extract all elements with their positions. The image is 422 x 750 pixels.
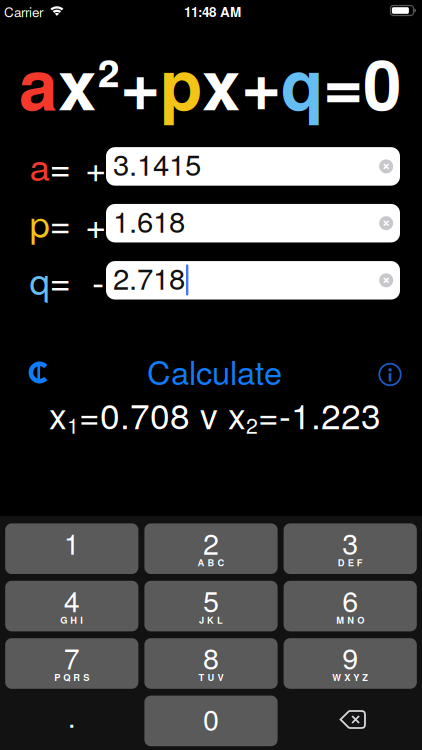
staticText: M N O xyxy=(336,613,364,627)
staticText: a xyxy=(29,139,49,191)
button[interactable]: Clear text xyxy=(379,216,393,230)
staticText: J K L xyxy=(199,613,223,627)
button[interactable]: p value xyxy=(106,204,400,242)
staticText: 7 xyxy=(64,637,80,678)
button[interactable]: 6 xyxy=(284,581,417,631)
staticText: q xyxy=(281,32,323,132)
staticText: - xyxy=(92,254,104,306)
staticText: 1.618 xyxy=(113,199,185,241)
staticText: = xyxy=(49,253,70,305)
staticText: A B C xyxy=(197,556,224,569)
staticText: 3 xyxy=(342,522,358,563)
staticText: W X Y Z xyxy=(332,671,368,684)
button[interactable]: 4 xyxy=(5,581,138,631)
staticText: D E F xyxy=(338,556,363,569)
button[interactable]: Clear text xyxy=(379,159,393,173)
staticText: q xyxy=(29,253,49,305)
staticText: P Q R S xyxy=(54,671,89,684)
staticText: 2 xyxy=(203,522,219,563)
staticText: 2.718 xyxy=(113,256,185,298)
button[interactable]: Clear all xyxy=(27,360,51,384)
button[interactable]: Delete xyxy=(284,696,417,746)
button[interactable]: 3 xyxy=(284,523,417,574)
staticText: 0 xyxy=(203,698,219,739)
staticText: 5 xyxy=(203,579,219,620)
button[interactable]: Calculate xyxy=(147,347,282,394)
staticText: p xyxy=(160,32,202,132)
staticText: x+ xyxy=(202,32,281,132)
staticText: 11:48 AM xyxy=(184,2,241,21)
button[interactable]: 1 xyxy=(5,523,138,574)
staticText: x²+ xyxy=(58,32,160,132)
staticText: 3.1415 xyxy=(113,142,201,184)
staticText: = xyxy=(49,139,70,191)
staticText: =0 xyxy=(323,32,402,132)
staticText: 9 xyxy=(342,637,358,678)
staticText: a xyxy=(19,32,58,132)
button[interactable]: 0 xyxy=(144,696,278,746)
staticText: 6 xyxy=(342,579,358,620)
button[interactable]: 2 xyxy=(144,523,278,574)
button[interactable]: Info xyxy=(379,363,401,385)
staticText: G H I xyxy=(60,613,83,627)
button[interactable]: 9 xyxy=(284,638,417,689)
staticText: T U V xyxy=(198,671,223,684)
staticText: p xyxy=(29,196,49,248)
button[interactable]: 8 xyxy=(144,638,278,689)
staticText: + xyxy=(85,140,106,193)
button[interactable]: a value xyxy=(106,147,400,186)
staticText: + xyxy=(85,197,106,249)
button[interactable]: q value xyxy=(106,261,400,300)
button[interactable]: 7 xyxy=(5,638,138,689)
staticText: 1 xyxy=(64,522,80,563)
button[interactable]: Clear text xyxy=(379,273,393,287)
button[interactable]: 5 xyxy=(144,581,278,631)
staticText: Carrier xyxy=(4,2,43,21)
button[interactable]: . xyxy=(5,696,138,746)
staticText: = xyxy=(49,196,70,248)
staticText: Calculate xyxy=(147,347,282,394)
staticText: 4 xyxy=(64,579,80,620)
staticText: . xyxy=(68,695,76,736)
staticText: 8 xyxy=(203,637,219,678)
staticText: x1=0.708 v x2=-1.223 xyxy=(49,389,381,439)
